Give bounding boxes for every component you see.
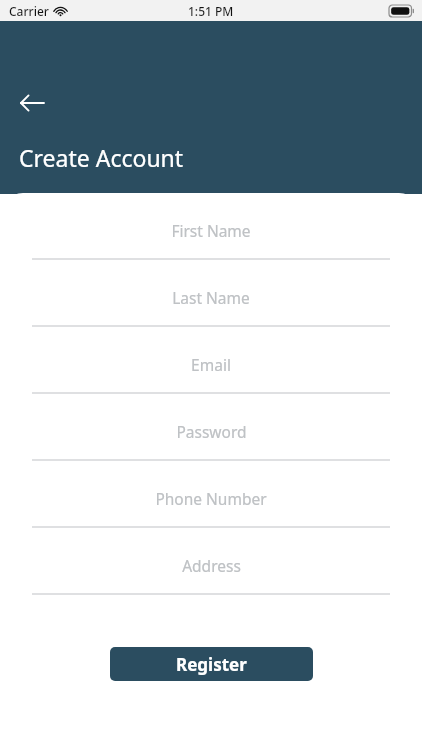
button[interactable]: Register bbox=[110, 647, 313, 681]
button[interactable]: First Name bbox=[0, 202, 422, 269]
button[interactable]: Password bbox=[0, 403, 422, 470]
staticText: Last Name bbox=[172, 287, 250, 308]
button[interactable]: Last Name bbox=[0, 269, 422, 336]
button[interactable]: Back bbox=[12, 83, 52, 123]
staticText: Phone Number bbox=[155, 488, 267, 509]
button[interactable]: Address bbox=[0, 537, 422, 604]
staticText: 1:51 PM bbox=[188, 3, 234, 19]
staticText: Password bbox=[176, 421, 247, 442]
staticText: First Name bbox=[171, 220, 251, 241]
button[interactable]: Email bbox=[0, 336, 422, 403]
staticText: Register bbox=[176, 653, 247, 676]
staticText: Create Account bbox=[19, 142, 184, 173]
staticText: Carrier bbox=[9, 3, 49, 19]
staticText: Email bbox=[191, 354, 231, 375]
button[interactable]: Phone Number bbox=[0, 470, 422, 537]
staticText: Address bbox=[182, 555, 241, 576]
